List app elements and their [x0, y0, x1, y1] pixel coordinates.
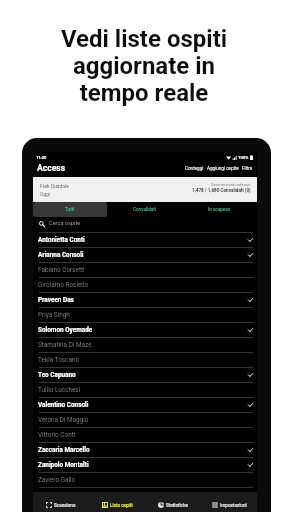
staticText: 11:00: [36, 155, 47, 160]
button[interactable]: Tutti: [33, 202, 107, 217]
staticText: Verona Di Maggio: [38, 416, 89, 424]
button[interactable]: Zaviero Gallo: [33, 472, 257, 487]
staticText: Girolamo Rosiello: [38, 281, 89, 289]
staticText: Stamatina Di Maze: [38, 341, 92, 349]
staticText: Antonietta Conti: [38, 236, 85, 244]
staticText: Convalidati: [133, 207, 156, 212]
staticText: Praveen Das: [38, 296, 74, 304]
button[interactable]: Cerca ospite: [39, 216, 257, 231]
button[interactable]: Fabiano Corsetti: [33, 262, 257, 277]
staticText: Vedi liste ospiti aggiornate in tempo re…: [0, 25, 288, 107]
staticText: Tekla Toscano: [38, 356, 80, 364]
staticText: Oggi: [40, 191, 51, 197]
staticText: Tullio Lucchesi: [38, 386, 81, 394]
button[interactable]: Statistiche: [145, 492, 201, 512]
staticText: Priya Singh: [38, 311, 70, 319]
button[interactable]: Frah Quintale: [33, 177, 257, 202]
button[interactable]: Filtra: [242, 166, 253, 171]
button[interactable]: Scansiona: [33, 492, 89, 512]
button[interactable]: Impostazioni: [201, 492, 257, 512]
button[interactable]: Zaccaria Marcello: [33, 442, 257, 457]
button[interactable]: In sospeso: [182, 202, 257, 217]
staticText: Scansiona: [54, 503, 76, 508]
other: Cerca ospite: [39, 221, 45, 227]
staticText: Zaviero Gallo: [38, 476, 76, 484]
button[interactable]: Teo Capuano: [33, 367, 257, 382]
button[interactable]: Conteggi: [185, 166, 204, 171]
button[interactable]: Convalidati: [107, 202, 182, 217]
button[interactable]: Lista ospiti: [89, 492, 145, 512]
button[interactable]: Aggiungi ospite: [207, 166, 239, 171]
staticText: In sospeso: [208, 207, 231, 212]
staticText: Zanipolo Montalti: [38, 461, 89, 469]
staticText: 1,478 / 1,680 Convalidati (0): [192, 188, 251, 193]
button[interactable]: Arianna Consoli: [33, 247, 257, 262]
staticText: Teo Capuano: [38, 371, 76, 379]
staticText: 100%: [238, 155, 249, 160]
button[interactable]: Tullio Lucchesi: [33, 382, 257, 397]
button[interactable]: Valentino Consoli: [33, 397, 257, 412]
button[interactable]: Stamatina Di Maze: [33, 337, 257, 352]
staticText: Solomon Oyemade: [38, 326, 93, 334]
staticText: Fabiano Corsetti: [38, 266, 85, 274]
staticText: Lista ospiti: [110, 503, 133, 508]
staticText: Valentino Consoli: [38, 401, 89, 409]
button[interactable]: Girolamo Rosiello: [33, 277, 257, 292]
staticText: Access: [37, 163, 66, 173]
button[interactable]: Zanipolo Montalti: [33, 457, 257, 472]
button[interactable]: Tekla Toscano: [33, 352, 257, 367]
staticText: Cerca ospite: [49, 220, 81, 227]
staticText: Zaccaria Marcello: [38, 446, 90, 454]
staticText: Frah Quintale: [40, 183, 69, 189]
button[interactable]: Verona Di Maggio: [33, 412, 257, 427]
button[interactable]: Priya Singh: [33, 307, 257, 322]
staticText: Sincronizzati adesso: [211, 182, 251, 187]
staticText: Tutti: [65, 207, 75, 212]
button[interactable]: Vittorio Conti: [33, 427, 257, 442]
staticText: Arianna Consoli: [38, 251, 84, 259]
staticText: Statistiche: [166, 503, 188, 508]
staticText: Vittorio Conti: [38, 431, 76, 439]
staticText: Impostazioni: [220, 503, 247, 508]
button[interactable]: Antonietta Conti: [33, 232, 257, 247]
button[interactable]: Praveen Das: [33, 292, 257, 307]
button[interactable]: Solomon Oyemade: [33, 322, 257, 337]
